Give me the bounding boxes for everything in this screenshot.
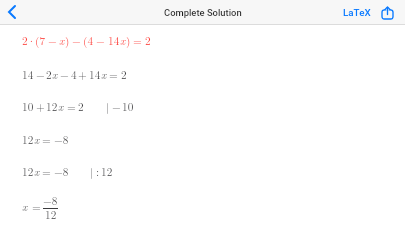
staticText: = bbox=[133, 32, 142, 48]
button[interactable]: LaTeX bbox=[340, 0, 373, 24]
staticText: | bbox=[90, 163, 94, 179]
staticText: = bbox=[32, 198, 41, 214]
staticText: 4 bbox=[71, 66, 77, 82]
staticText: x bbox=[58, 98, 64, 114]
staticText: x bbox=[52, 66, 58, 82]
staticText: x bbox=[101, 66, 107, 82]
staticText: LaTeX bbox=[343, 7, 371, 18]
staticText: (4 bbox=[83, 32, 94, 48]
staticText: 12 bbox=[22, 163, 34, 179]
staticText: = bbox=[42, 163, 51, 179]
staticText: (7 bbox=[35, 32, 46, 48]
button[interactable]: Back bbox=[0, 0, 26, 24]
staticText: 12 bbox=[45, 206, 57, 222]
staticText: 14 bbox=[22, 66, 34, 82]
staticText: x bbox=[59, 32, 65, 48]
staticText: : bbox=[96, 163, 100, 179]
staticText: = bbox=[67, 98, 76, 114]
staticText: 2 bbox=[22, 32, 28, 48]
button[interactable]: Share bbox=[377, 0, 398, 24]
staticText: 14 bbox=[108, 32, 120, 48]
staticText: 10 bbox=[122, 98, 134, 114]
staticText: −8 bbox=[54, 131, 69, 147]
staticText: x bbox=[120, 32, 126, 48]
staticText: − bbox=[60, 66, 69, 82]
staticText: 2 bbox=[121, 66, 127, 82]
staticText: + bbox=[78, 66, 87, 82]
staticText: 2 bbox=[145, 32, 151, 48]
staticText: 14 bbox=[89, 66, 101, 82]
staticText: −8 bbox=[54, 163, 69, 179]
staticText: x bbox=[34, 131, 40, 147]
staticText: −8 bbox=[43, 192, 58, 208]
staticText: | bbox=[106, 98, 110, 114]
staticText: − bbox=[48, 32, 57, 48]
staticText: − bbox=[112, 98, 121, 114]
staticText: − bbox=[36, 66, 45, 82]
staticText: = bbox=[109, 66, 118, 82]
staticText: = bbox=[42, 131, 51, 147]
staticText: x bbox=[34, 163, 40, 179]
staticText: 12 bbox=[22, 131, 34, 147]
staticText: 12 bbox=[46, 98, 58, 114]
staticText: Complete Solution bbox=[164, 7, 242, 18]
staticText: + bbox=[36, 98, 45, 114]
staticText: x bbox=[22, 198, 28, 214]
staticText: · bbox=[27, 32, 36, 48]
staticText: 10 bbox=[22, 98, 34, 114]
staticText: 2 bbox=[46, 66, 52, 82]
staticText: 12 bbox=[101, 163, 113, 179]
staticText: − bbox=[72, 32, 81, 48]
staticText: ) bbox=[126, 32, 131, 48]
staticText: 2 bbox=[78, 98, 84, 114]
staticText: − bbox=[96, 32, 105, 48]
staticText: ) bbox=[65, 32, 70, 48]
